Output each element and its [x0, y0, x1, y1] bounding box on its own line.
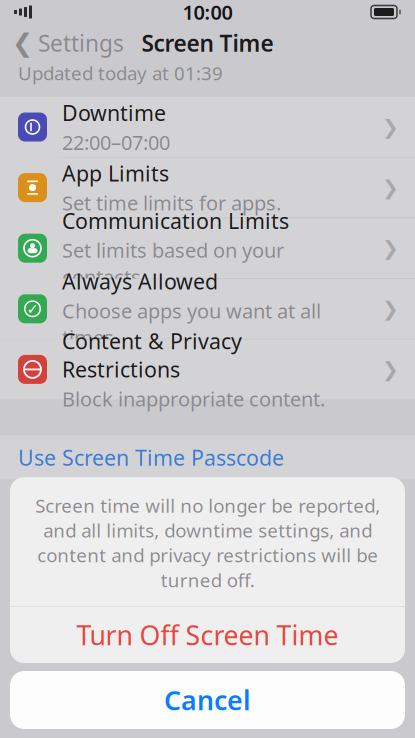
- button[interactable]: ❮: [0, 22, 124, 64]
- button[interactable]: ✓: [0, 279, 415, 339]
- staticText: Use Screen Time Passcode: [18, 443, 284, 471]
- button[interactable]: Use Screen Time Passcode: [0, 435, 415, 479]
- staticText: ❯: [382, 116, 399, 138]
- button[interactable]: Cancel: [10, 671, 405, 729]
- staticText: Downtime: [62, 99, 166, 127]
- staticText: Block inappropriate content.: [62, 385, 325, 412]
- button[interactable]: App Limits: [0, 158, 415, 218]
- staticText: ❯: [382, 358, 399, 381]
- staticText: ❮: [12, 29, 33, 57]
- staticText: Always Allowed: [62, 267, 218, 295]
- button[interactable]: Content & Privacy Restrictions: [0, 339, 415, 399]
- staticText: Choose apps you want at all times.: [62, 297, 321, 350]
- staticText: ❯: [382, 297, 399, 320]
- staticText: ✓: [26, 300, 38, 317]
- staticText: Use a passcode to secure Screen Time set…: [18, 486, 382, 561]
- button[interactable]: Downtime: [0, 97, 415, 158]
- staticText: App Limits: [62, 159, 169, 187]
- staticText: Settings: [38, 28, 124, 58]
- staticText: ❯: [382, 237, 399, 260]
- staticText: Cancel: [164, 682, 251, 718]
- staticText: 10:00: [182, 0, 232, 25]
- staticText: Turn Off Screen Time: [76, 617, 338, 653]
- staticText: Set limits based on your contacts.: [62, 237, 284, 290]
- staticText: Set time limits for apps.: [62, 189, 281, 216]
- staticText: Content & Privacy Restrictions: [62, 327, 242, 383]
- staticText: Updated today at 01:39: [18, 61, 223, 85]
- staticText: Screen Time: [141, 28, 273, 58]
- button[interactable]: Communication Limits: [0, 218, 415, 279]
- staticText: 22:00–07:00: [62, 129, 170, 155]
- staticText: ❯: [382, 176, 399, 199]
- button[interactable]: Turn Off Screen Time: [10, 607, 405, 663]
- staticText: Screen time will no longer be reported, …: [35, 493, 380, 592]
- staticText: Communication Limits: [62, 206, 289, 235]
